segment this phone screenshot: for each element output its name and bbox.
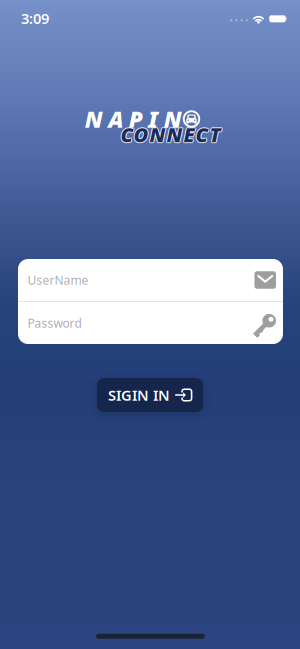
button[interactable]: Password bbox=[18, 302, 283, 344]
staticText: Password bbox=[27, 315, 81, 331]
staticText: CONNECT bbox=[120, 121, 220, 148]
staticText: CONNECT bbox=[120, 122, 220, 148]
staticText: CONNECT bbox=[120, 121, 220, 148]
staticText: NAPIN bbox=[85, 104, 182, 134]
staticText: CONNECT bbox=[121, 120, 221, 147]
staticText: CONNECT bbox=[120, 122, 220, 149]
staticText: UserName bbox=[27, 272, 88, 288]
button[interactable]: UserName bbox=[18, 259, 283, 301]
staticText: SIGIN IN bbox=[108, 385, 170, 405]
staticText: CONNECT bbox=[121, 121, 221, 148]
staticText: 3:09 bbox=[21, 8, 49, 28]
staticText: CONNECT bbox=[120, 120, 220, 147]
staticText: CONNECT bbox=[120, 120, 220, 147]
staticText: CONNECT bbox=[121, 122, 221, 148]
button[interactable]: SIGIN IN bbox=[97, 378, 203, 412]
